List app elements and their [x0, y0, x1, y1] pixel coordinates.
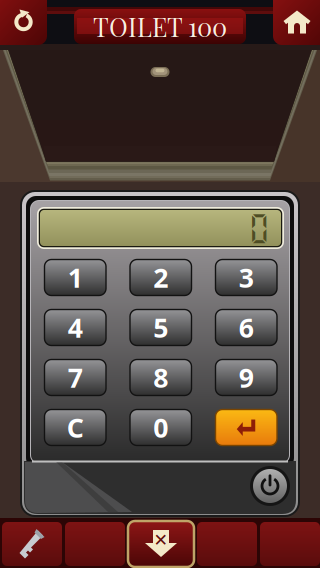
- staticText: 1: [68, 260, 83, 295]
- button[interactable]: Empty slot 4: [197, 522, 257, 566]
- button[interactable]: 8: [130, 359, 191, 395]
- button[interactable]: 4: [44, 309, 106, 345]
- button[interactable]: Enter: [215, 409, 277, 445]
- button[interactable]: Restart: [0, 0, 47, 45]
- staticText: 7: [68, 360, 83, 395]
- button[interactable]: 1: [44, 259, 106, 295]
- staticText: 6: [239, 310, 254, 345]
- button[interactable]: 7: [44, 359, 106, 395]
- button[interactable]: 5: [130, 309, 191, 345]
- staticText: C: [67, 410, 84, 445]
- button[interactable]: TOILET 100: [74, 9, 246, 44]
- button[interactable]: 6: [215, 309, 277, 345]
- button[interactable]: 0: [130, 409, 191, 445]
- staticText: ✕: [153, 530, 168, 550]
- staticText: TOILET 100: [93, 10, 227, 43]
- button[interactable]: Key item: [2, 522, 62, 566]
- button[interactable]: Empty slot 5: [260, 522, 320, 566]
- staticText: 0: [248, 210, 270, 246]
- button[interactable]: 2: [130, 259, 191, 295]
- button[interactable]: Empty slot 2: [65, 522, 125, 566]
- staticText: 0: [153, 410, 168, 445]
- staticText: 3: [239, 260, 254, 295]
- button[interactable]: 3: [215, 259, 277, 295]
- button[interactable]: Power: [249, 465, 291, 507]
- button[interactable]: Close: [128, 521, 194, 567]
- button[interactable]: Home: [273, 0, 320, 45]
- staticText: 9: [239, 360, 254, 395]
- staticText: 5: [153, 310, 168, 345]
- staticText: 8: [153, 360, 168, 395]
- button[interactable]: 9: [215, 359, 277, 395]
- staticText: 2: [153, 260, 168, 295]
- button[interactable]: C: [44, 409, 106, 445]
- staticText: 4: [68, 310, 83, 345]
